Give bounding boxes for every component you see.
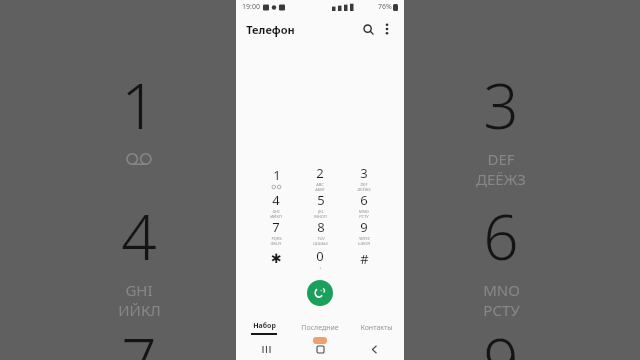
staticText: АБВГ (315, 187, 325, 191)
staticText: ИЙКЛ (270, 214, 282, 218)
staticText: DEF (487, 149, 515, 169)
staticText: Телефон (246, 22, 295, 37)
button[interactable]: 8 (298, 218, 342, 245)
staticText: ЬЭЮЯ (358, 241, 370, 245)
button[interactable]: Последние (292, 318, 348, 338)
button[interactable]: Call (307, 280, 333, 306)
button[interactable]: 7 (254, 218, 298, 245)
staticText: 1 (121, 63, 157, 147)
staticText: GHI (125, 280, 153, 300)
button[interactable]: 5 (298, 191, 342, 218)
staticText: WXYZ (359, 236, 370, 241)
staticText: 2 (316, 164, 324, 182)
staticText: 5 (317, 191, 325, 209)
staticText: PQRS (271, 236, 282, 241)
button[interactable]: 3 (342, 164, 386, 191)
button[interactable]: Search (358, 19, 378, 39)
staticText: ABC (316, 182, 324, 187)
staticText: # (360, 250, 369, 268)
staticText: 8 (317, 218, 325, 236)
staticText: 9 (360, 218, 368, 236)
button[interactable]: Home (312, 341, 328, 357)
staticText: 9 (483, 318, 519, 360)
staticText: 0 (316, 247, 324, 265)
staticText: 19:00 (242, 2, 260, 12)
staticText: TUV (317, 236, 325, 241)
staticText: JKL (318, 209, 324, 214)
staticText: ФХЦЧ (270, 241, 282, 245)
staticText: 7 (272, 218, 280, 236)
button[interactable]: 2 (298, 164, 342, 191)
staticText: MNO (483, 280, 520, 300)
staticText: 6 (360, 191, 368, 209)
staticText: РСТУ (359, 214, 369, 218)
staticText: 76% (378, 2, 392, 12)
staticText: DEF (360, 182, 368, 187)
button[interactable]: # (342, 245, 386, 272)
staticText: Последние (301, 323, 339, 333)
button[interactable]: 6 (342, 191, 386, 218)
button[interactable]: 9 (342, 218, 386, 245)
button[interactable]: More options (378, 20, 396, 38)
staticText: ШЩЪЫ (313, 241, 328, 245)
staticText: Набор (253, 321, 276, 331)
staticText: GHI (272, 209, 280, 214)
staticText: 1 (273, 166, 281, 184)
staticText: ДЕЁЖЗ (476, 169, 526, 189)
button[interactable]: Recents (258, 341, 274, 357)
staticText: ДЕЁЖЗ (357, 187, 371, 191)
staticText: ИЙКЛ (118, 300, 161, 320)
button[interactable]: ✱ (254, 245, 298, 272)
button[interactable]: 1 (254, 164, 298, 191)
staticText: 4 (272, 191, 280, 209)
staticText: 3 (360, 164, 368, 182)
staticText: 4 (121, 194, 157, 278)
staticText: + (319, 265, 322, 270)
staticText: Контакты (360, 323, 393, 333)
staticText: ✱ (271, 251, 282, 266)
staticText: MNO (359, 209, 369, 214)
staticText: 7 (121, 318, 157, 360)
button[interactable]: Back (366, 341, 382, 357)
button[interactable]: Контакты (348, 318, 404, 338)
staticText: МНОП (314, 214, 327, 218)
button[interactable]: Набор (236, 318, 292, 338)
staticText: РСТУ (483, 300, 520, 320)
staticText: 6 (483, 194, 519, 278)
button[interactable]: 4 (254, 191, 298, 218)
staticText: 3 (483, 63, 519, 147)
button[interactable]: 0 (298, 245, 342, 272)
